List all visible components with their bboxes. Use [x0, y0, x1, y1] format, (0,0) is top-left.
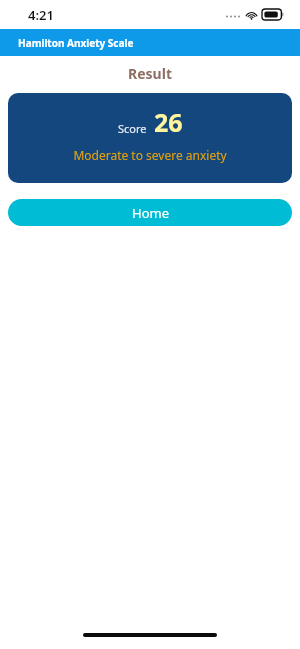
staticText: Moderate to severe anxiety	[8, 147, 292, 163]
staticText: Home	[132, 204, 169, 222]
button[interactable]: Score	[8, 93, 292, 183]
staticText: Result	[0, 64, 300, 83]
staticText: 4:21	[28, 6, 54, 24]
button[interactable]: Home	[8, 199, 292, 226]
staticText: 26	[154, 105, 183, 139]
staticText: Hamilton Anxiety Scale	[18, 36, 134, 50]
staticText: Score	[118, 121, 147, 136]
